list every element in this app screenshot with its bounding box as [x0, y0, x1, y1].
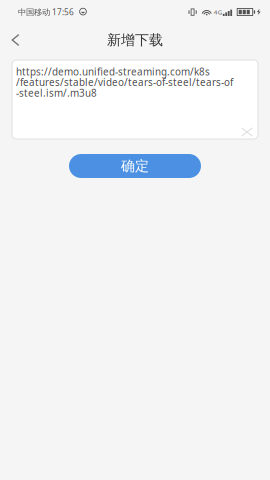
staticText: /features/stable/video/tears-of-steel/te… — [16, 76, 233, 89]
button[interactable]: Back — [0, 26, 31, 54]
staticText: -steel.ism/.m3u8 — [16, 86, 97, 99]
staticText: 中国移动 17:56 — [18, 6, 74, 17]
staticText: 新增下载 — [107, 31, 163, 49]
staticText: 4G — [214, 8, 222, 16]
button[interactable]: Clear text — [236, 123, 258, 141]
staticText: https://demo.unified-streaming.com/k8s — [16, 65, 210, 78]
staticText: 确定 — [121, 157, 149, 175]
button[interactable]: 确定 — [69, 154, 201, 178]
